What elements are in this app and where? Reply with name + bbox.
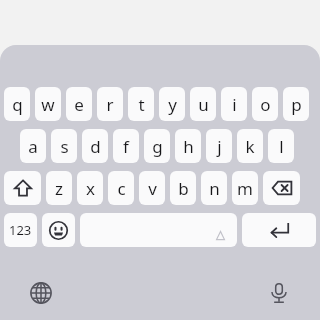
staticText: l [279,135,284,158]
button[interactable]: m [232,171,258,205]
button[interactable]: Backspace [263,171,300,205]
button[interactable]: d [82,129,108,163]
button[interactable]: 123 [4,213,37,247]
staticText: x [86,177,95,200]
staticText: o [260,93,271,116]
button[interactable]: b [170,171,196,205]
button[interactable]: w [35,87,61,121]
staticText: e [74,93,84,116]
staticText: g [152,135,163,158]
button[interactable]: Space [80,213,237,247]
staticText: a [28,135,38,158]
staticText: s [60,135,69,158]
staticText: m [237,177,253,200]
button[interactable]: Emoji [42,213,75,247]
button[interactable]: o [252,87,278,121]
staticText: b [178,177,189,200]
button[interactable]: Shift [4,171,41,205]
staticText: n [209,177,220,200]
button[interactable]: e [66,87,92,121]
button[interactable]: p [283,87,309,121]
button[interactable]: i [221,87,247,121]
staticText: t [138,93,145,116]
staticText: z [55,177,63,200]
button[interactable]: y [159,87,185,121]
button[interactable]: j [206,129,232,163]
staticText: d [90,135,101,158]
staticText: f [123,135,129,158]
button[interactable]: c [108,171,134,205]
staticText: j [217,135,222,158]
button[interactable]: s [51,129,77,163]
button[interactable]: g [144,129,170,163]
button[interactable]: Enter [242,213,316,247]
button[interactable]: f [113,129,139,163]
button[interactable]: h [175,129,201,163]
button[interactable]: k [237,129,263,163]
staticText: w [41,93,55,116]
button[interactable]: v [139,171,165,205]
staticText: y [168,93,177,116]
button[interactable]: x [77,171,103,205]
staticText: k [245,135,255,158]
button[interactable]: z [46,171,72,205]
staticText: 123 [9,221,32,239]
staticText: v [148,177,157,200]
button[interactable]: l [268,129,294,163]
button[interactable]: a [20,129,46,163]
staticText: r [106,93,114,116]
staticText: q [12,93,23,116]
button[interactable]: r [97,87,123,121]
button[interactable]: Voice input [262,276,296,310]
staticText: c [117,177,126,200]
staticText: u [198,93,209,116]
staticText: p [291,93,302,116]
staticText: i [232,93,237,116]
staticText: h [183,135,194,158]
button[interactable]: n [201,171,227,205]
button[interactable]: Change language [24,276,58,310]
button[interactable]: u [190,87,216,121]
button[interactable]: q [4,87,30,121]
button[interactable]: t [128,87,154,121]
